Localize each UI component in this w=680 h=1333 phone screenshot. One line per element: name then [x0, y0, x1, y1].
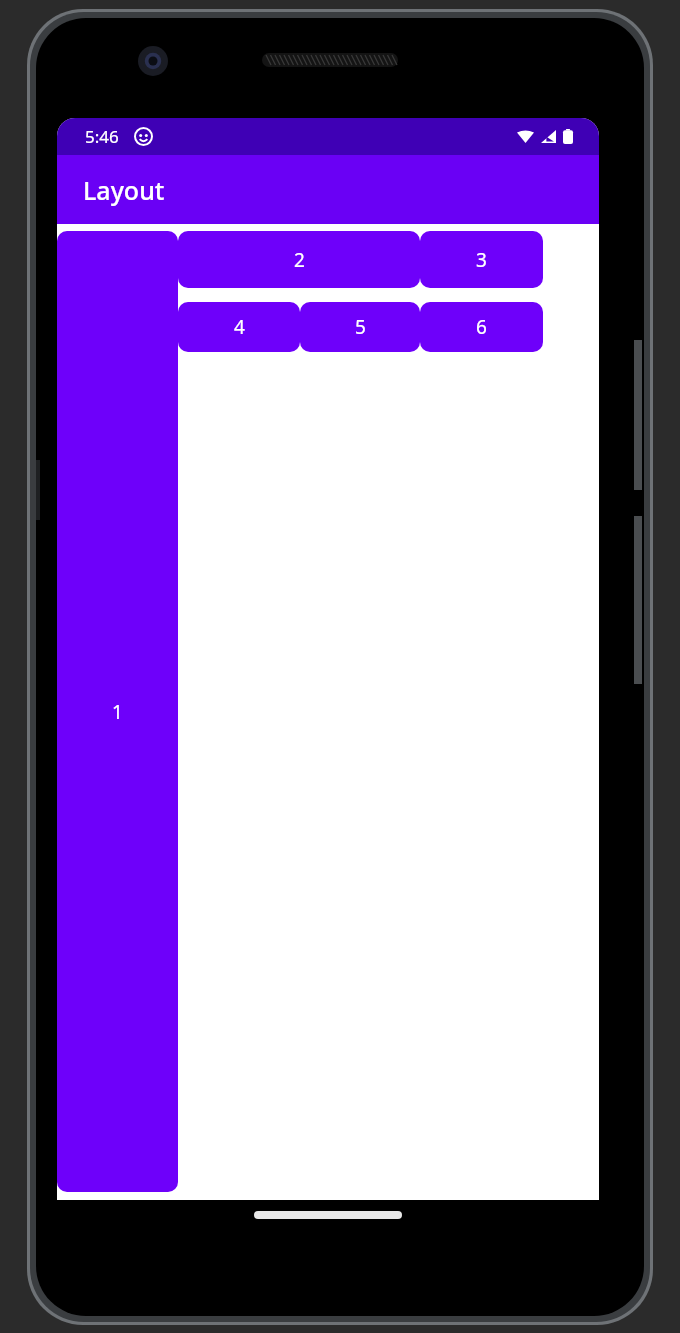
button[interactable]: 6 [420, 302, 543, 352]
button[interactable]: 1 [57, 231, 178, 1192]
staticText: 4 [234, 314, 245, 340]
staticText: 1 [112, 699, 123, 725]
button[interactable]: 5 [300, 302, 420, 352]
staticText: 5 [355, 314, 366, 340]
staticText: Layout [83, 173, 165, 207]
staticText: 5:46 [85, 125, 119, 148]
staticText: 3 [476, 247, 487, 273]
staticText: 2 [294, 247, 305, 273]
button[interactable]: 4 [178, 302, 300, 352]
button[interactable]: 2 [178, 231, 420, 288]
button[interactable]: 3 [420, 231, 543, 288]
staticText: 6 [476, 314, 487, 340]
